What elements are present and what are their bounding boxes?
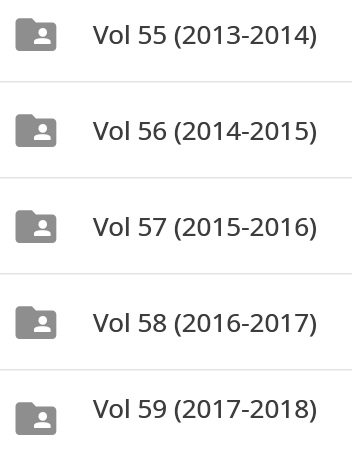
staticText: Vol 59 (2017-2018)	[93, 390, 317, 425]
button[interactable]: Vol 55 (2013-2014)	[0, 0, 352, 81]
staticText: Vol 55 (2013-2014)	[93, 16, 317, 51]
button[interactable]: Vol 59 (2017-2018)	[0, 371, 352, 445]
button[interactable]: Vol 58 (2016-2017)	[0, 275, 352, 369]
button[interactable]: Vol 56 (2014-2015)	[0, 83, 352, 177]
staticText: Vol 57 (2015-2016)	[93, 208, 317, 243]
staticText: Vol 58 (2016-2017)	[93, 304, 317, 339]
button[interactable]: Vol 57 (2015-2016)	[0, 179, 352, 273]
staticText: Vol 56 (2014-2015)	[93, 112, 317, 147]
